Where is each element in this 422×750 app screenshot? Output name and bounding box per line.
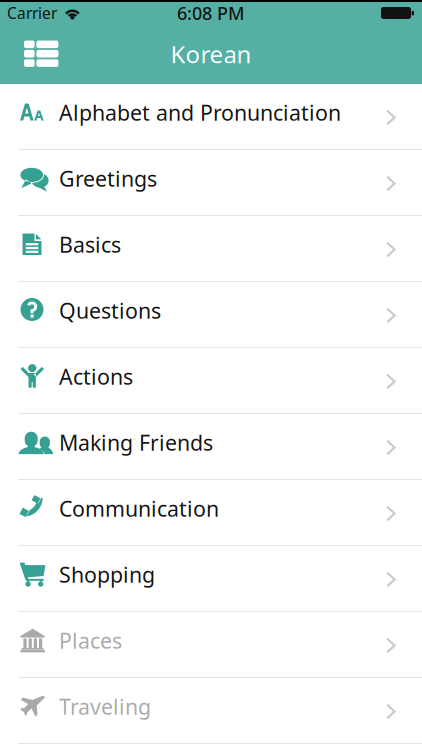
button[interactable]: Greetings (0, 150, 422, 216)
staticText: Actions (59, 362, 133, 391)
staticText: 6:08 PM (177, 1, 245, 25)
staticText: Greetings (59, 164, 157, 193)
staticText: Shopping (59, 560, 155, 589)
button[interactable]: Questions (0, 282, 422, 348)
staticText: Making Friends (59, 428, 213, 457)
button[interactable]: Alphabet and Pronunciation (0, 84, 422, 150)
button[interactable]: Basics (0, 216, 422, 282)
staticText: Basics (59, 230, 121, 259)
staticText: Traveling (59, 692, 151, 721)
staticText: Places (59, 626, 122, 655)
button[interactable]: Shopping (0, 546, 422, 612)
button[interactable]: Actions (0, 348, 422, 414)
staticText: Carrier (7, 2, 57, 24)
button[interactable]: Making Friends (0, 414, 422, 480)
button[interactable]: Places (0, 612, 422, 678)
button[interactable]: Traveling (0, 678, 422, 744)
staticText: Korean (170, 38, 251, 70)
button[interactable]: Menu (0, 24, 77, 84)
staticText: Questions (59, 296, 161, 325)
staticText: Communication (59, 494, 219, 523)
button[interactable]: Communication (0, 480, 422, 546)
staticText: Alphabet and Pronunciation (59, 98, 341, 127)
